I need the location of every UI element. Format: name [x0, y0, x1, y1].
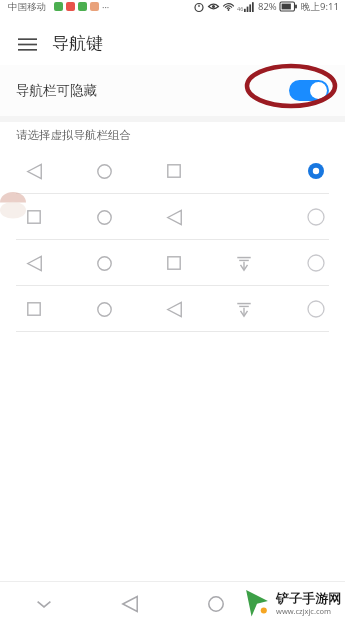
- button[interactable]: Selected: [301, 156, 331, 186]
- staticText: 导航键: [52, 33, 103, 54]
- button[interactable]: Menu: [12, 29, 42, 59]
- button[interactable]: Navigation bar layout option: [0, 240, 345, 285]
- button[interactable]: Home: [173, 582, 259, 626]
- button[interactable]: Navigation bar layout option: [0, 148, 345, 193]
- staticText: www.czjxjc.com: [276, 606, 332, 616]
- button[interactable]: Not selected: [301, 248, 331, 278]
- staticText: 导航栏可隐藏: [16, 82, 97, 99]
- button[interactable]: 导航栏可隐藏: [0, 65, 345, 116]
- staticText: 铲子手游网: [276, 590, 341, 606]
- staticText: 82%: [258, 0, 277, 13]
- button[interactable]: Not selected: [301, 202, 331, 232]
- button[interactable]: Back: [87, 582, 173, 626]
- staticText: 46: [237, 5, 244, 12]
- button[interactable]: Navigation bar layout option: [0, 194, 345, 239]
- button[interactable]: Hide navigation bar: [0, 582, 87, 626]
- staticText: 请选择虚拟导航栏组合: [16, 128, 131, 142]
- button[interactable]: Not selected: [301, 294, 331, 324]
- staticText: ···: [102, 1, 110, 13]
- staticText: 中国移动: [8, 1, 46, 13]
- staticText: 晚上9:11: [301, 0, 339, 13]
- button[interactable]: Navigation bar layout option: [0, 286, 345, 331]
